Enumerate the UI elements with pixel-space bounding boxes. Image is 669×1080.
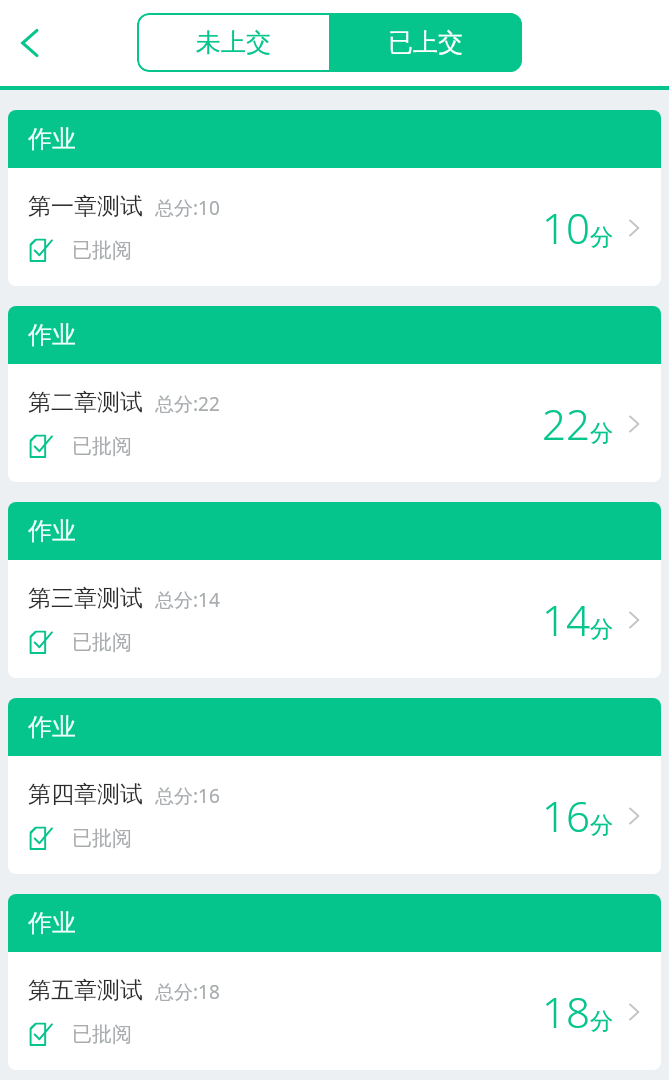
staticText: 分 bbox=[590, 223, 613, 252]
staticText: 分 bbox=[590, 1007, 613, 1036]
staticText: 作业 bbox=[28, 124, 76, 154]
button[interactable]: 作业 bbox=[8, 698, 661, 874]
staticText: 18 bbox=[542, 983, 590, 1040]
staticText: 已批阅 bbox=[72, 434, 132, 459]
staticText: 第二章测试 bbox=[28, 388, 143, 417]
button[interactable]: 作业 bbox=[8, 502, 661, 678]
staticText: 16 bbox=[542, 787, 590, 844]
staticText: 已批阅 bbox=[72, 238, 132, 263]
button[interactable]: 作业 bbox=[8, 894, 661, 1070]
staticText: 作业 bbox=[28, 516, 76, 546]
staticText: 14 bbox=[542, 591, 590, 648]
staticText: 第一章测试 bbox=[28, 192, 143, 221]
staticText: 已上交 bbox=[388, 27, 463, 58]
button[interactable]: 作业 bbox=[8, 306, 661, 482]
staticText: 22 bbox=[542, 395, 590, 452]
staticText: 分 bbox=[590, 615, 613, 644]
staticText: 作业 bbox=[28, 712, 76, 742]
staticText: 已批阅 bbox=[72, 1022, 132, 1047]
staticText: 作业 bbox=[28, 908, 76, 938]
button[interactable]: 未上交 bbox=[137, 13, 329, 72]
staticText: 总分:14 bbox=[155, 587, 220, 613]
staticText: 分 bbox=[590, 419, 613, 448]
staticText: 总分:10 bbox=[155, 195, 220, 221]
staticText: 第五章测试 bbox=[28, 976, 143, 1005]
staticText: 总分:22 bbox=[155, 391, 220, 417]
button[interactable]: 已上交 bbox=[329, 13, 522, 72]
staticText: 作业 bbox=[28, 320, 76, 350]
staticText: 已批阅 bbox=[72, 630, 132, 655]
staticText: 已批阅 bbox=[72, 826, 132, 851]
staticText: 总分:16 bbox=[155, 783, 220, 809]
staticText: 分 bbox=[590, 811, 613, 840]
staticText: 总分:18 bbox=[155, 979, 220, 1005]
button[interactable]: 作业 bbox=[8, 110, 661, 286]
button[interactable]: Back bbox=[0, 12, 62, 74]
staticText: 10 bbox=[542, 199, 590, 256]
staticText: 第四章测试 bbox=[28, 780, 143, 809]
staticText: 未上交 bbox=[196, 27, 271, 58]
staticText: 第三章测试 bbox=[28, 584, 143, 613]
